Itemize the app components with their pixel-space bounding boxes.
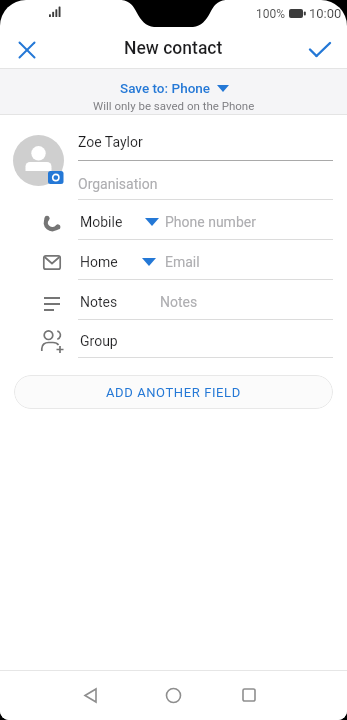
button[interactable]: Organisation (0, 161, 347, 200)
staticText: Organisation (78, 176, 158, 192)
staticText: Notes (80, 294, 118, 310)
button[interactable] (225, 676, 273, 714)
button[interactable]: Save to: Phone (93, 80, 255, 112)
button[interactable] (66, 676, 114, 714)
staticText: ADD ANOTHER FIELD (106, 385, 241, 400)
staticText: Mobile (80, 214, 123, 230)
staticText: Save to: Phone (120, 80, 211, 96)
button[interactable] (149, 676, 197, 714)
button[interactable]: Mobile (0, 200, 347, 240)
staticText: Group (80, 333, 118, 349)
button[interactable]: Zoe Taylor (0, 121, 347, 161)
button[interactable]: Group (0, 320, 347, 358)
staticText: Phone number (165, 214, 256, 230)
button[interactable]: ADD ANOTHER FIELD (14, 375, 333, 409)
button[interactable] (12, 33, 42, 63)
staticText: Notes (160, 294, 198, 310)
staticText: Zoe Taylor (78, 134, 143, 150)
staticText: 10:00 (309, 6, 342, 21)
button[interactable] (13, 135, 64, 186)
button[interactable] (303, 33, 337, 67)
button[interactable]: Home (0, 240, 347, 280)
button[interactable]: Notes (0, 280, 347, 320)
staticText: 100% (256, 7, 286, 21)
staticText: Home (80, 254, 118, 270)
staticText: Will only be saved on the Phone (93, 99, 255, 112)
staticText: New contact (124, 38, 223, 59)
staticText: Email (165, 254, 200, 270)
